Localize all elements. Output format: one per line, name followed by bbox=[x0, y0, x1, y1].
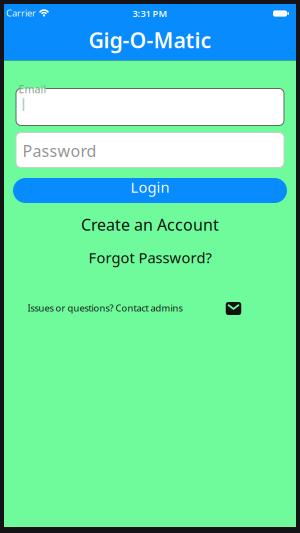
staticText: Create an Account bbox=[81, 214, 219, 235]
staticText: Gig-O-Matic bbox=[88, 26, 211, 54]
staticText: Login bbox=[130, 177, 169, 197]
staticText: 3:31 PM bbox=[132, 7, 167, 20]
staticText: Issues or questions? Contact admins bbox=[27, 302, 182, 314]
staticText: Forgot Password? bbox=[88, 248, 211, 267]
staticText: Email bbox=[18, 82, 46, 96]
button[interactable]: Contact admins bbox=[226, 302, 241, 315]
staticText: Carrier bbox=[6, 7, 36, 19]
button[interactable]: Forgot Password? bbox=[88, 248, 211, 267]
button[interactable]: Password bbox=[16, 132, 284, 167]
button[interactable]: Create an Account bbox=[81, 214, 219, 235]
button[interactable]: Email bbox=[16, 88, 284, 125]
button[interactable]: Login bbox=[13, 178, 287, 203]
staticText: Password bbox=[22, 140, 96, 161]
